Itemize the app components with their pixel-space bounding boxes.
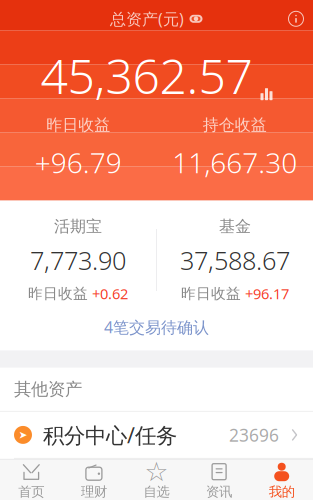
staticText: 37,588.67: [180, 243, 290, 277]
staticText: 其他资产: [14, 379, 82, 400]
staticText: ☆: [144, 457, 168, 487]
staticText: ➤: [18, 429, 27, 441]
button[interactable]: ➤: [0, 412, 313, 458]
staticText: 昨日收益: [28, 285, 88, 303]
button[interactable]: 活期宝: [0, 217, 156, 303]
button[interactable]: 理财: [63, 459, 125, 500]
staticText: 昨日收益: [181, 285, 241, 303]
staticText: 11,667.30: [172, 144, 297, 181]
staticText: 积分中心/任务: [43, 421, 177, 449]
button[interactable]: 说明: [279, 4, 313, 34]
staticText: 理财: [81, 484, 107, 500]
staticText: 自选: [143, 484, 169, 500]
button[interactable]: 首页: [0, 459, 63, 500]
staticText: 基金: [219, 217, 251, 236]
staticText: +0.62: [92, 284, 128, 303]
staticText: 我的: [269, 484, 295, 500]
staticText: 45,362.57: [40, 43, 252, 107]
staticText: +96.17: [245, 284, 289, 303]
button[interactable]: 4笔交易待确认: [0, 303, 313, 351]
staticText: 资讯: [206, 484, 232, 500]
staticText: 23696: [229, 423, 279, 446]
button[interactable]: 我的: [250, 459, 313, 500]
button[interactable]: 资讯: [188, 459, 250, 500]
staticText: 昨日收益: [46, 115, 110, 135]
staticText: 总资产(元): [110, 8, 184, 29]
staticText: 持仓收益: [203, 115, 267, 135]
staticText: +96.79: [35, 144, 122, 181]
staticText: 4笔交易待确认: [104, 316, 209, 338]
staticText: 活期宝: [54, 217, 102, 236]
button[interactable]: 基金: [157, 217, 313, 303]
staticText: 首页: [18, 484, 44, 500]
button[interactable]: ☆: [125, 459, 188, 500]
staticText: 7,773.90: [30, 243, 126, 277]
